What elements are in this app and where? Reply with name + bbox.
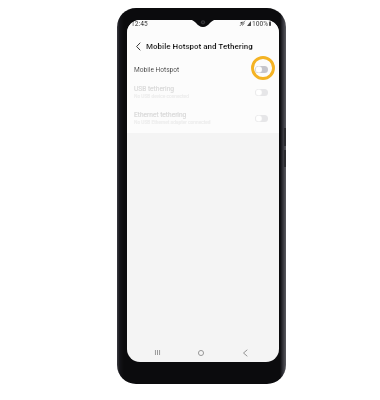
button[interactable]: Toggle Mobile Hotspot xyxy=(255,66,268,73)
button[interactable]: Mobile Hotspot xyxy=(127,59,279,80)
staticText: Mobile Hotspot and Tethering xyxy=(146,42,253,51)
staticText: 12:45 xyxy=(131,20,148,28)
button[interactable]: Toggle Ethernet tethering xyxy=(255,115,268,122)
staticText: 100% xyxy=(252,20,269,28)
button[interactable]: Home xyxy=(192,343,210,362)
button[interactable]: Back xyxy=(236,343,254,362)
staticText: No USB Ethernet adapter connected xyxy=(134,120,211,126)
button[interactable]: Back xyxy=(131,40,144,53)
button[interactable]: USB tethering xyxy=(127,79,279,105)
staticText: Mobile Hotspot xyxy=(134,66,180,74)
button[interactable]: Recents xyxy=(148,343,166,362)
button[interactable]: Ethernet tethering xyxy=(127,105,279,131)
staticText: USB tethering xyxy=(134,85,175,93)
staticText: Ethernet tethering xyxy=(134,111,187,119)
staticText: No USB device connected xyxy=(134,94,189,100)
button[interactable]: Toggle USB tethering xyxy=(255,89,268,96)
